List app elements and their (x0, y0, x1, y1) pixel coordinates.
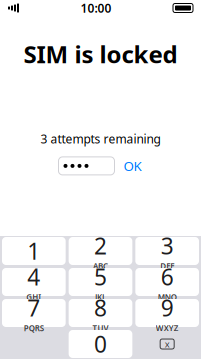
button[interactable]: 8 (69, 299, 132, 327)
staticText: 9 (161, 293, 174, 323)
button[interactable]: 4 (2, 268, 66, 296)
button[interactable]: Delete (135, 330, 199, 358)
staticText: 4 (27, 262, 40, 292)
staticText: 5 (94, 262, 107, 292)
staticText: PQRS (24, 323, 44, 333)
button[interactable]: 1 (2, 237, 66, 265)
button[interactable]: 0 (69, 330, 132, 358)
staticText: TUV (92, 323, 108, 333)
button[interactable]: 9 (135, 299, 199, 327)
staticText: 3 (161, 231, 174, 261)
button[interactable]: 5 (69, 268, 132, 296)
staticText: 10:00 (80, 0, 111, 16)
staticText: DEF (160, 261, 174, 271)
staticText: 6 (161, 262, 174, 292)
staticText: OK (123, 157, 141, 175)
staticText: x (165, 338, 170, 350)
staticText: SIM is locked (23, 38, 177, 70)
staticText: MNO (158, 292, 177, 302)
staticText: GHI (26, 292, 41, 302)
button[interactable]: 7 (2, 299, 66, 327)
staticText: ABC (93, 261, 108, 271)
staticText: WXYZ (156, 323, 179, 333)
button[interactable]: 6 (135, 268, 199, 296)
staticText: 0 (94, 329, 107, 359)
staticText: JKL (95, 292, 106, 302)
staticText: 3 attempts remaining (40, 131, 160, 147)
staticText: 2 (94, 231, 107, 261)
button[interactable]: 2 (69, 237, 132, 265)
staticText: 7 (27, 293, 40, 323)
button[interactable]: 3 (135, 237, 199, 265)
staticText: 1 (27, 236, 40, 266)
staticText: 8 (94, 293, 107, 323)
button[interactable]: OK (122, 157, 142, 175)
